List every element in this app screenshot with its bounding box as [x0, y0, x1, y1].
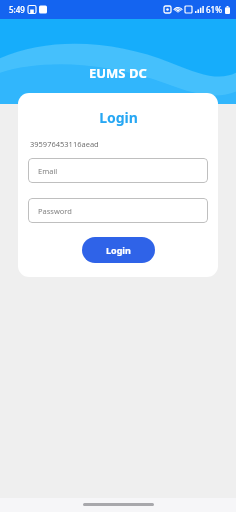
staticText: Email — [38, 166, 58, 176]
button[interactable]: Password — [28, 198, 208, 223]
button[interactable]: Login — [82, 237, 155, 263]
staticText: Login — [99, 108, 138, 127]
staticText: Login — [106, 244, 131, 256]
staticText: 61% — [206, 4, 222, 15]
button[interactable]: Email — [28, 158, 208, 183]
staticText: Password — [38, 206, 72, 216]
staticText: 395976453116aead — [30, 139, 99, 149]
staticText: EUMS DC — [89, 64, 147, 82]
staticText: 5:49 — [9, 4, 25, 15]
